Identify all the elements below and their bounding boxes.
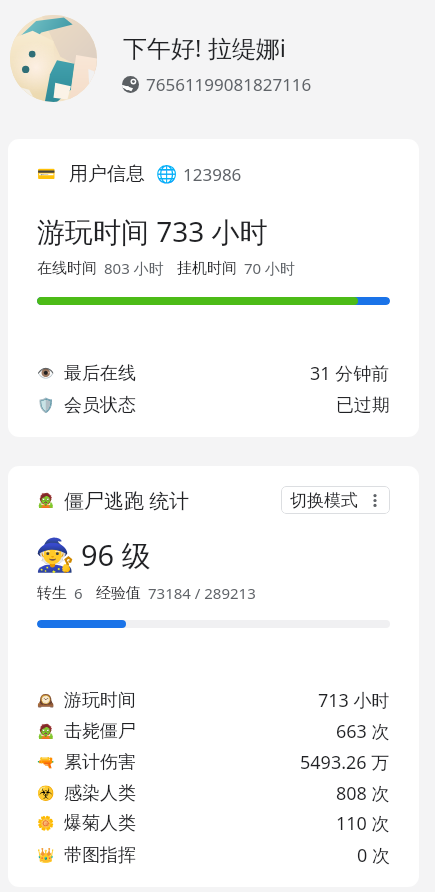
button[interactable]: 👑 — [8, 839, 419, 871]
staticText: 123986 — [183, 163, 242, 186]
button[interactable]: 🔫 — [8, 746, 419, 778]
staticText: 73184 / 289213 — [148, 583, 256, 603]
staticText: ☣️ — [37, 785, 55, 801]
staticText: 已过期 — [336, 394, 390, 417]
staticText: 6 — [74, 583, 83, 603]
other: Profile picture — [10, 15, 97, 102]
staticText: 🔫 — [37, 754, 55, 770]
staticText: 803 小时 — [104, 258, 164, 278]
staticText: 70 小时 — [244, 258, 296, 278]
button[interactable]: Profile picture — [0, 0, 435, 120]
staticText: 🌐 — [156, 164, 178, 184]
button[interactable]: ☣️ — [8, 777, 419, 809]
other: Steam — [122, 76, 139, 93]
staticText: 👑 — [37, 847, 55, 863]
staticText: 转生 — [37, 584, 67, 603]
button[interactable]: 🛡️ — [8, 389, 419, 421]
staticText: 下午好! 拉缇娜i — [123, 31, 286, 64]
staticText: 808 次 — [336, 781, 390, 806]
staticText: 在线时间 — [37, 259, 97, 278]
staticText: 🛡️ — [37, 397, 55, 413]
staticText: 713 小时 — [318, 688, 390, 713]
staticText: 用户信息 — [69, 162, 145, 186]
staticText: 切换模式 — [290, 490, 358, 511]
staticText: 0 次 — [357, 843, 390, 868]
staticText: 110 次 — [336, 811, 390, 836]
staticText: 最后在线 — [64, 362, 136, 385]
staticText: 👁️ — [37, 365, 55, 381]
button[interactable]: 切换模式 — [281, 486, 390, 514]
staticText: 31 分钟前 — [310, 361, 390, 386]
button[interactable]: 🧟 — [8, 715, 419, 747]
staticText: 击毙僵尸 — [64, 720, 136, 743]
staticText: 经验值 — [96, 584, 141, 603]
staticText: 🕰️ — [37, 692, 55, 708]
staticText: 累计伤害 — [64, 751, 136, 774]
staticText: 76561199081827116 — [146, 73, 312, 96]
staticText: 🧟 — [37, 723, 55, 739]
staticText: 🧟 — [37, 492, 55, 508]
button[interactable]: 🕰️ — [8, 684, 419, 716]
staticText: 游玩时间 — [64, 689, 136, 712]
other: More options — [373, 494, 377, 507]
staticText: 663 次 — [336, 719, 390, 744]
staticText: 🧙 — [35, 536, 75, 574]
staticText: 🌼 — [37, 815, 55, 831]
staticText: 5493.26 万 — [300, 750, 390, 775]
staticText: 爆菊人类 — [64, 812, 136, 835]
staticText: 感染人类 — [64, 782, 136, 805]
staticText: 挂机时间 — [177, 259, 237, 278]
staticText: 游玩时间 733 小时 — [37, 212, 268, 250]
staticText: 96 级 — [81, 535, 151, 575]
staticText: 会员状态 — [64, 394, 136, 417]
button[interactable]: 🌼 — [8, 807, 419, 839]
staticText: 💳 — [37, 165, 56, 183]
staticText: 僵尸逃跑 统计 — [64, 487, 190, 514]
button[interactable]: 👁️ — [8, 357, 419, 389]
staticText: 带图指挥 — [64, 844, 136, 867]
